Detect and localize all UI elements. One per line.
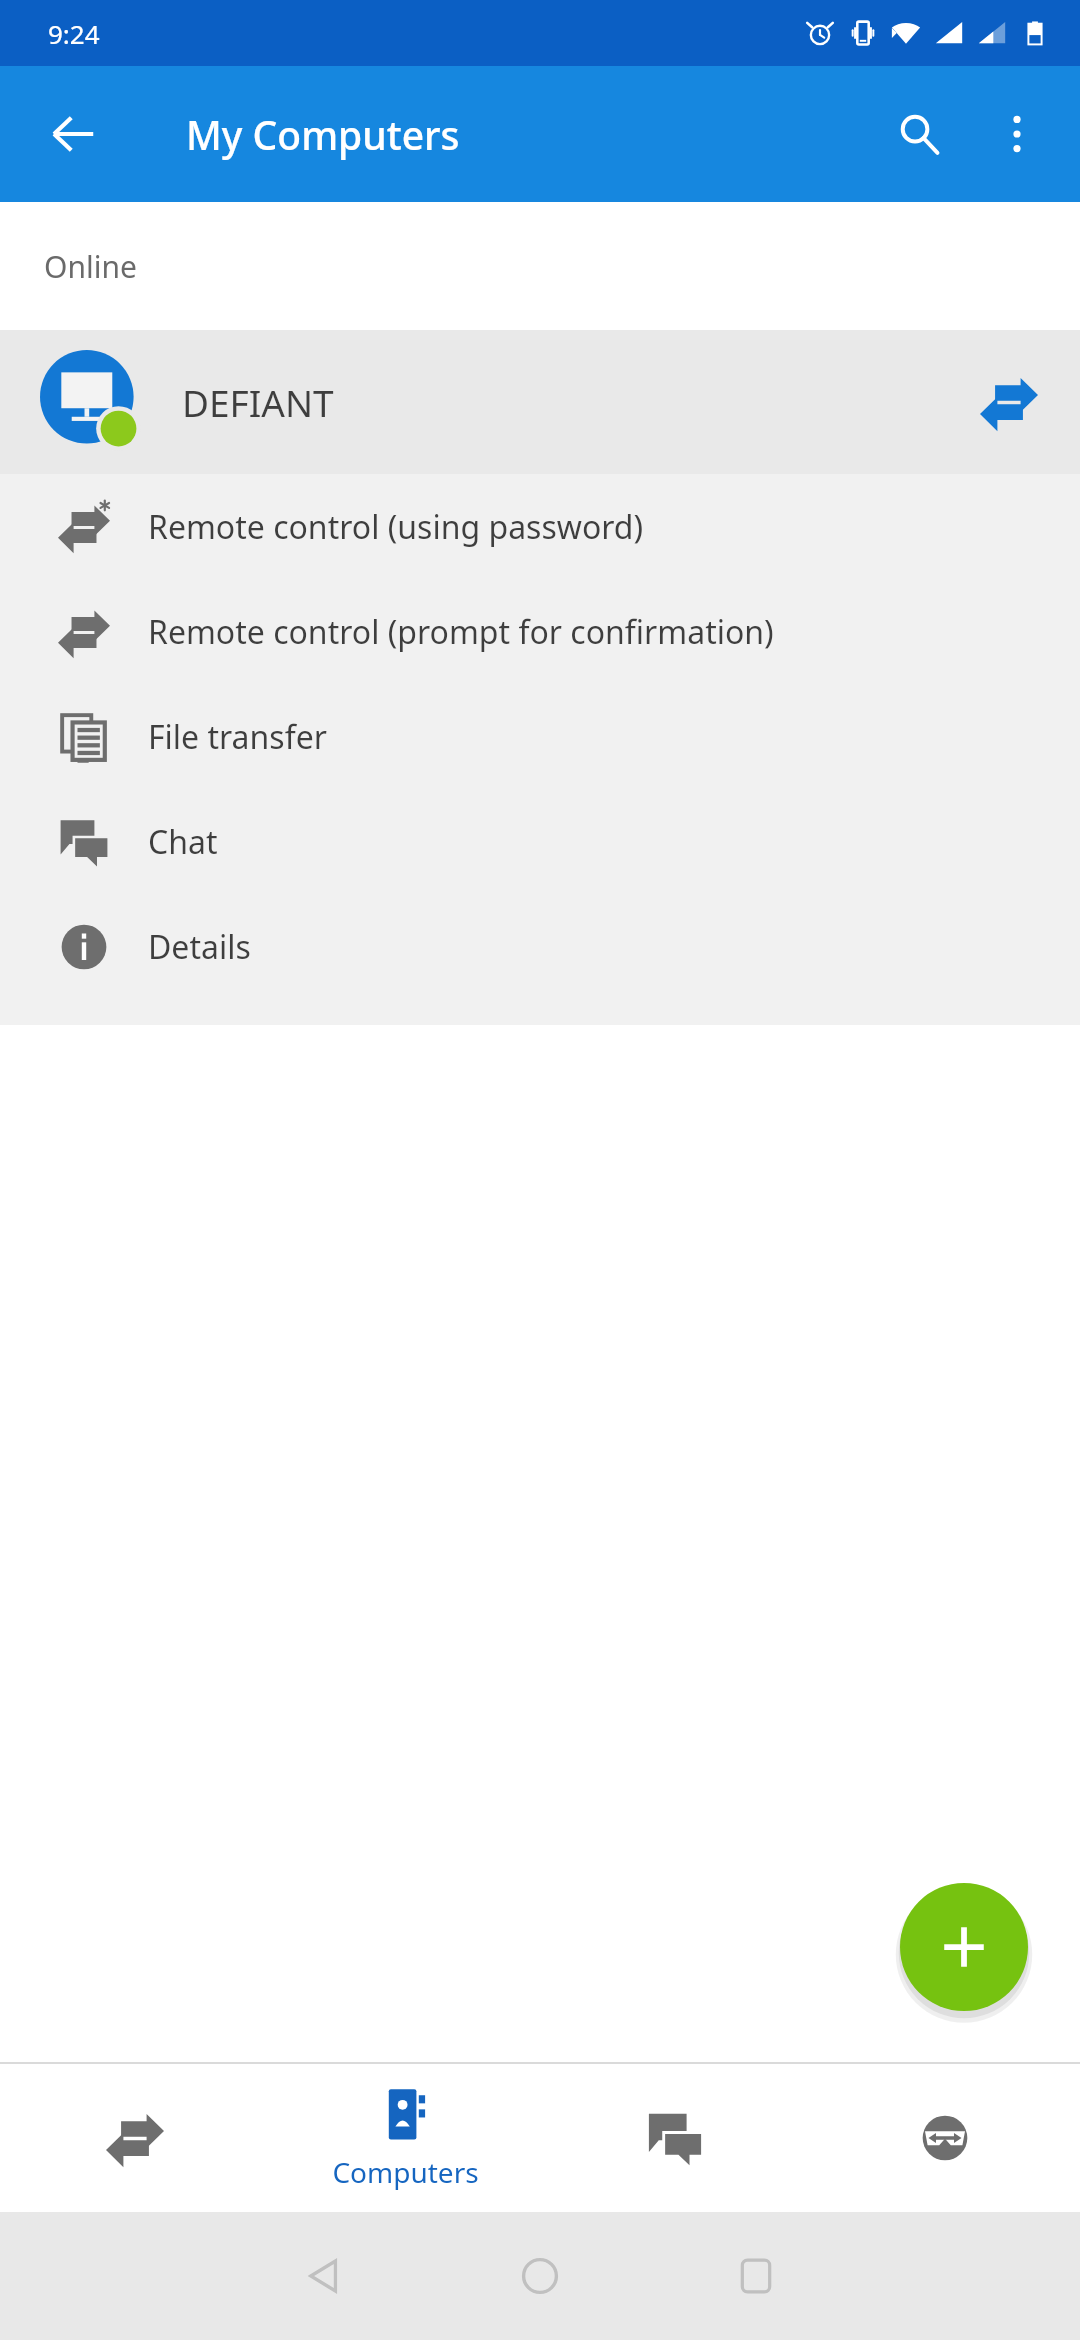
button[interactable]: Search: [870, 85, 968, 183]
button[interactable]: Computers: [270, 2064, 540, 2212]
staticText: Remote control (using password): [148, 505, 644, 549]
button[interactable]: Chat: [0, 789, 1080, 894]
button[interactable]: Remote control (using password): [0, 474, 1080, 579]
button[interactable]: Details: [0, 894, 1080, 999]
staticText: Chat: [148, 820, 218, 864]
staticText: 9:24: [48, 16, 100, 51]
button[interactable]: DEFIANT: [0, 330, 1080, 474]
staticText: File transfer: [148, 715, 327, 759]
button[interactable]: Connect to DEFIANT: [960, 353, 1058, 451]
staticText: Details: [148, 925, 251, 969]
staticText: Online: [44, 246, 137, 287]
button[interactable]: Add computer: [900, 1883, 1028, 2011]
button[interactable]: TeamViewer session: [810, 2064, 1080, 2212]
button[interactable]: File transfer: [0, 684, 1080, 789]
staticText: DEFIANT: [182, 377, 334, 427]
button[interactable]: Back: [216, 2212, 432, 2340]
button[interactable]: Remote control: [0, 2064, 270, 2212]
button[interactable]: Home: [432, 2212, 648, 2340]
staticText: Remote control (prompt for confirmation): [148, 610, 774, 654]
button[interactable]: More options: [968, 85, 1066, 183]
button[interactable]: Chat: [540, 2064, 810, 2212]
staticText: My Computers: [186, 108, 460, 161]
button[interactable]: Back: [30, 91, 116, 177]
button[interactable]: Remote control (prompt for confirmation): [0, 579, 1080, 684]
staticText: Computers: [332, 2153, 479, 2191]
button[interactable]: Recent apps: [648, 2212, 864, 2340]
